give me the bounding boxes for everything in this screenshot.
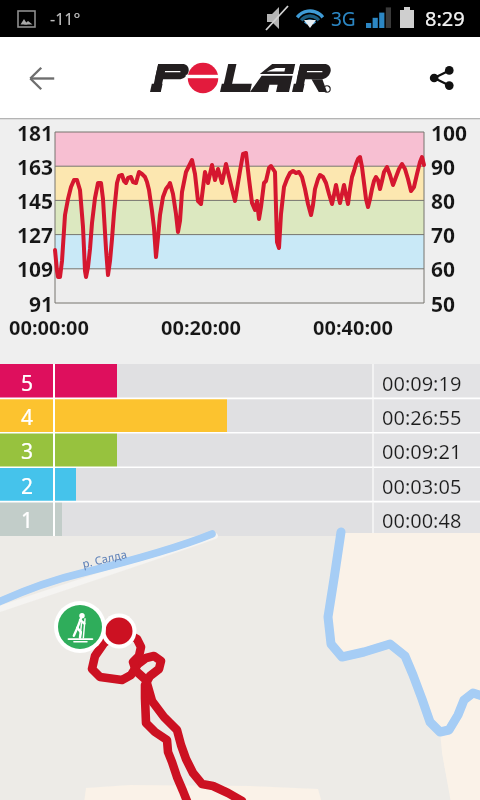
staticText: 91 (0, 290, 53, 319)
button[interactable]: Start point (54, 601, 106, 653)
staticText: 163 (0, 153, 53, 182)
staticText: 00:00:00 (9, 314, 89, 341)
staticText: 00:26:55 (382, 404, 462, 431)
staticText: 50 (431, 290, 479, 319)
staticText: 00:00:48 (382, 507, 462, 534)
staticText: 4 (0, 403, 54, 432)
button[interactable]: Share (414, 50, 470, 106)
staticText: 00:09:21 (382, 438, 462, 465)
staticText: 00:03:05 (382, 473, 462, 500)
staticText: 60 (431, 255, 479, 284)
staticText: 109 (0, 255, 53, 284)
staticText: -11° (50, 8, 81, 30)
staticText: 5 (0, 369, 54, 398)
staticText: 127 (0, 221, 53, 250)
staticText: 90 (431, 153, 479, 182)
staticText: 00:09:19 (382, 370, 462, 397)
staticText: 100 (431, 119, 479, 148)
button[interactable]: Back (14, 50, 70, 106)
staticText: 2 (0, 472, 54, 501)
staticText: 3 (0, 437, 54, 466)
staticText: 3G (331, 6, 356, 32)
staticText: 80 (431, 187, 479, 216)
staticText: 181 (0, 119, 53, 148)
staticText: 00:40:00 (313, 314, 393, 341)
staticText: 70 (431, 221, 479, 250)
staticText: 00:20:00 (161, 314, 241, 341)
staticText: 145 (0, 187, 53, 216)
staticText: 1 (0, 506, 54, 535)
staticText: 8:29 (425, 5, 465, 32)
staticText: р. Салда (81, 546, 128, 571)
